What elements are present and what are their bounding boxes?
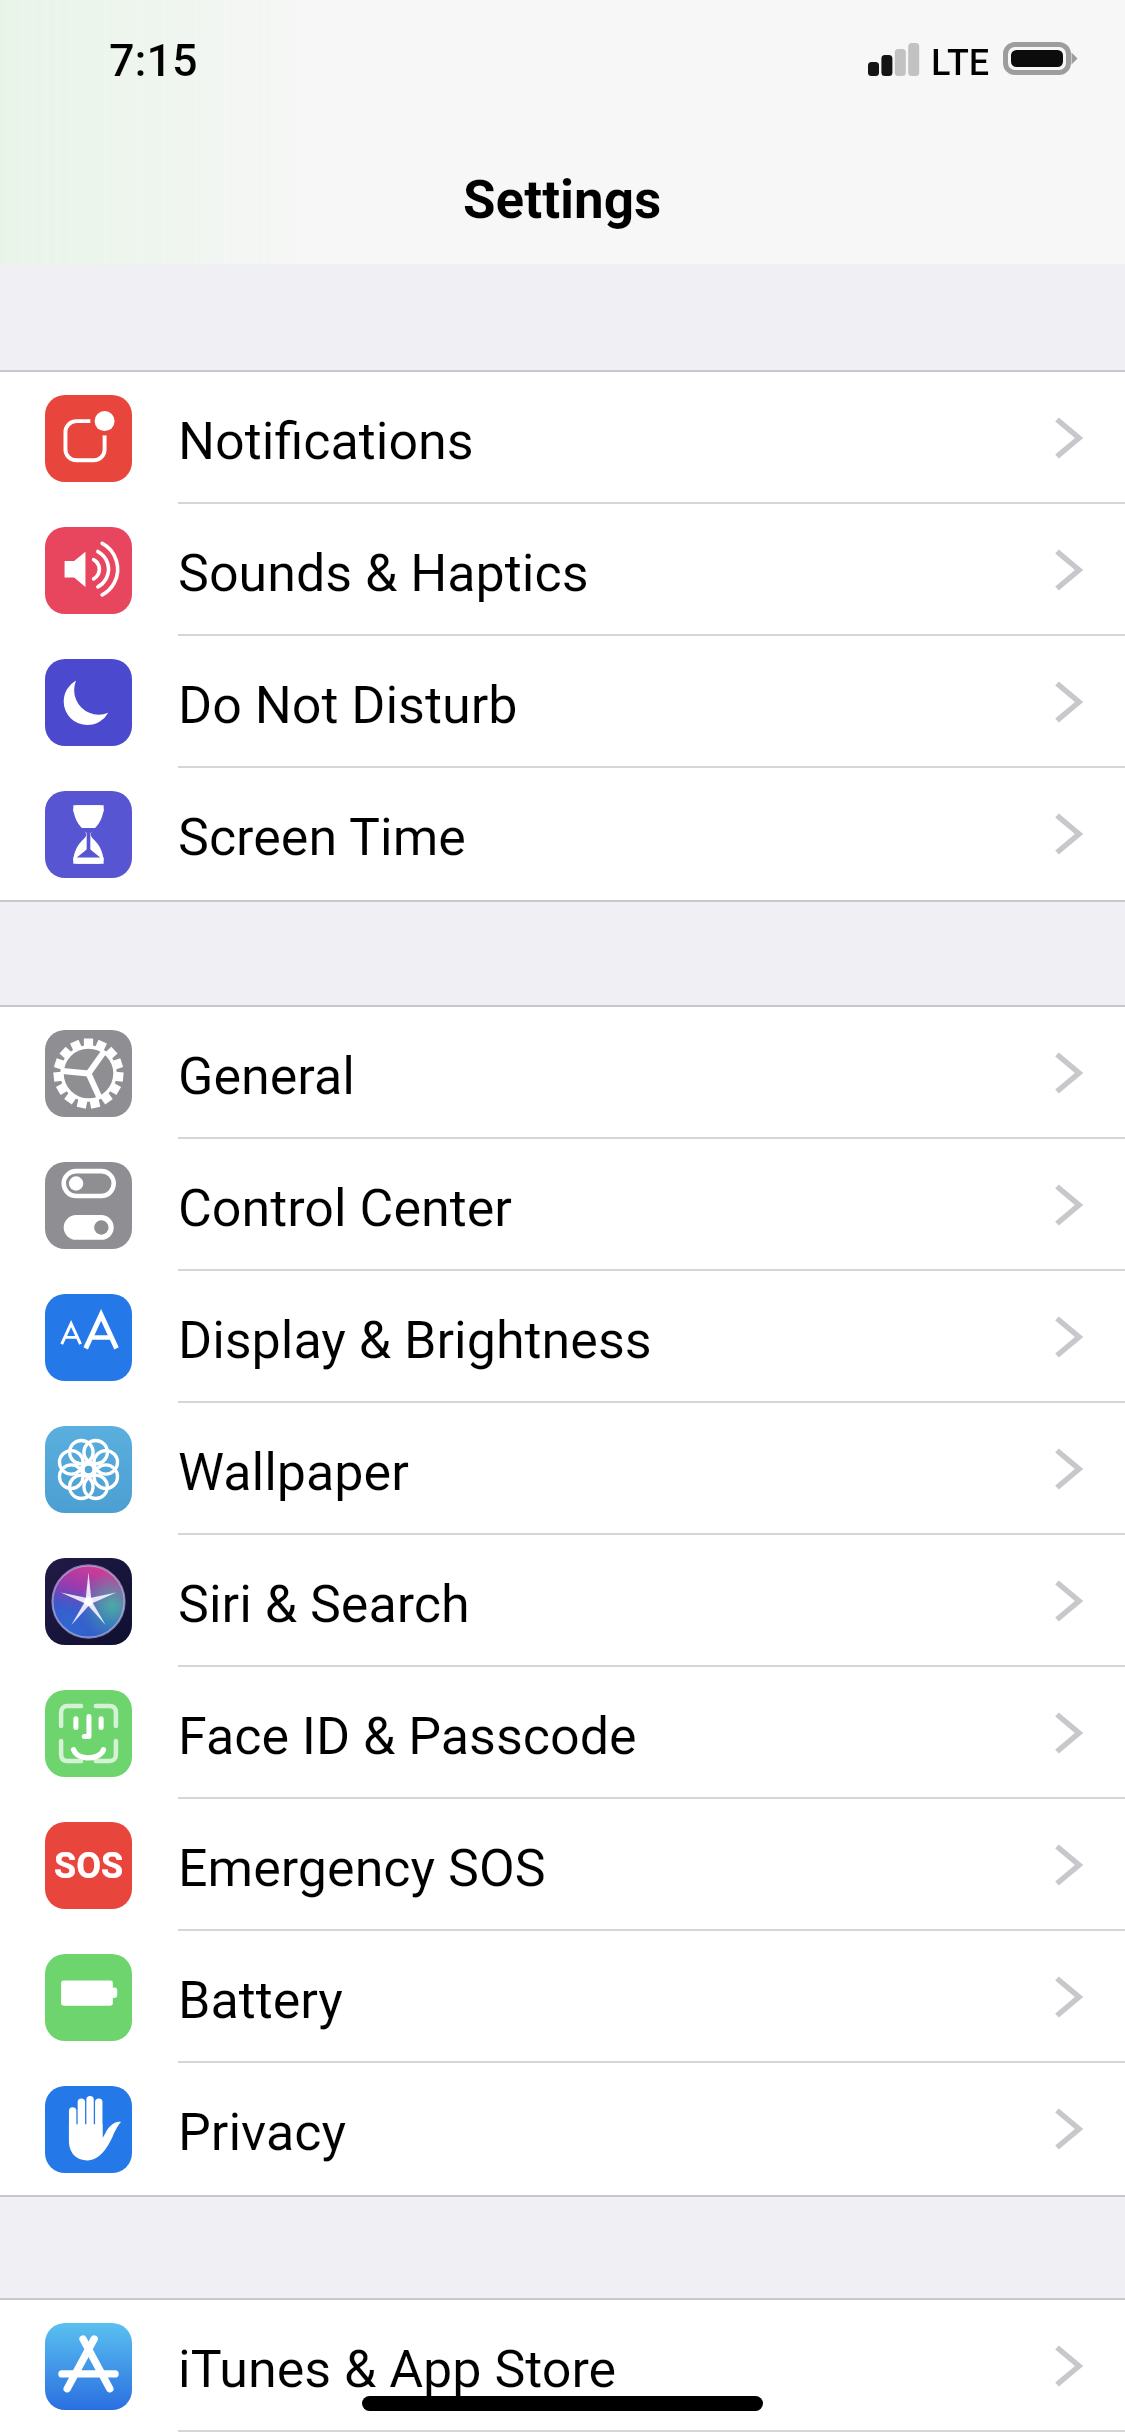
staticText: Screen Time [178, 807, 466, 868]
button[interactable]: Privacy [0, 2063, 1125, 2195]
staticText: Sounds & Haptics [178, 543, 589, 604]
button[interactable]: Control Center [0, 1139, 1125, 1271]
button[interactable]: Screen Time [0, 768, 1125, 900]
staticText: Siri & Search [178, 1574, 470, 1635]
staticText: LTE [931, 42, 990, 84]
staticText: Emergency SOS [178, 1838, 546, 1899]
button[interactable]: Do Not Disturb [0, 636, 1125, 768]
button[interactable]: Face ID & Passcode [0, 1667, 1125, 1799]
other: Cellular signal strength [868, 42, 919, 76]
staticText: Notifications [178, 411, 474, 472]
button[interactable]: General [0, 1007, 1125, 1139]
button[interactable]: Sounds & Haptics [0, 504, 1125, 636]
button[interactable]: Battery [0, 1931, 1125, 2063]
button[interactable]: Siri & Search [0, 1535, 1125, 1667]
staticText: Display & Brightness [178, 1310, 652, 1371]
other: Battery full [1003, 42, 1077, 76]
staticText: 7:15 [109, 34, 198, 87]
button[interactable]: Notifications [0, 372, 1125, 504]
button[interactable]: SOS [0, 1799, 1125, 1931]
button[interactable]: Display & Brightness [0, 1271, 1125, 1403]
staticText: Do Not Disturb [178, 675, 518, 736]
button[interactable]: Wallpaper [0, 1403, 1125, 1535]
staticText: Face ID & Passcode [178, 1706, 637, 1767]
staticText: Settings [463, 169, 662, 231]
staticText: SOS [54, 1845, 124, 1887]
button[interactable]: iTunes & App Store [0, 2300, 1125, 2432]
staticText: Battery [178, 1970, 343, 2031]
staticText: iTunes & App Store [178, 2339, 617, 2400]
staticText: Control Center [178, 1178, 512, 1239]
staticText: Wallpaper [178, 1442, 409, 1503]
staticText: Privacy [178, 2102, 346, 2163]
staticText: General [178, 1046, 355, 1107]
